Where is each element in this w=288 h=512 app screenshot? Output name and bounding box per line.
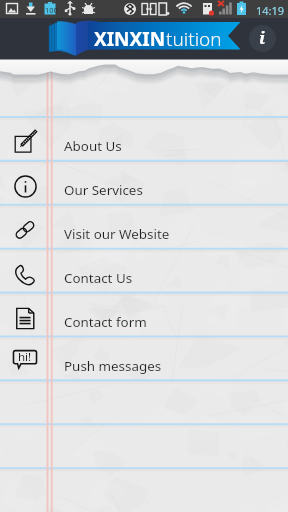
staticText: Our Services <box>64 181 143 199</box>
button[interactable]: hi! <box>0 337 288 381</box>
button[interactable]: Contact Us <box>0 249 288 293</box>
staticText: hi! <box>18 349 32 365</box>
staticText: i <box>259 26 266 49</box>
staticText: XINXIN <box>94 26 166 52</box>
button[interactable]: Contact form <box>0 293 288 337</box>
button[interactable]: Info <box>249 25 276 52</box>
staticText: Visit our Website <box>64 225 170 243</box>
staticText: Contact form <box>64 313 147 331</box>
staticText: 100 <box>45 5 58 15</box>
staticText: About Us <box>64 137 122 155</box>
button[interactable]: Visit our Website <box>0 205 288 249</box>
button[interactable]: About Us <box>0 117 288 161</box>
staticText: 14:19 <box>256 3 285 18</box>
staticText: Push messages <box>64 357 162 375</box>
staticText: tuition <box>166 26 222 52</box>
button[interactable]: Our Services <box>0 161 288 205</box>
staticText: Contact Us <box>64 269 133 287</box>
